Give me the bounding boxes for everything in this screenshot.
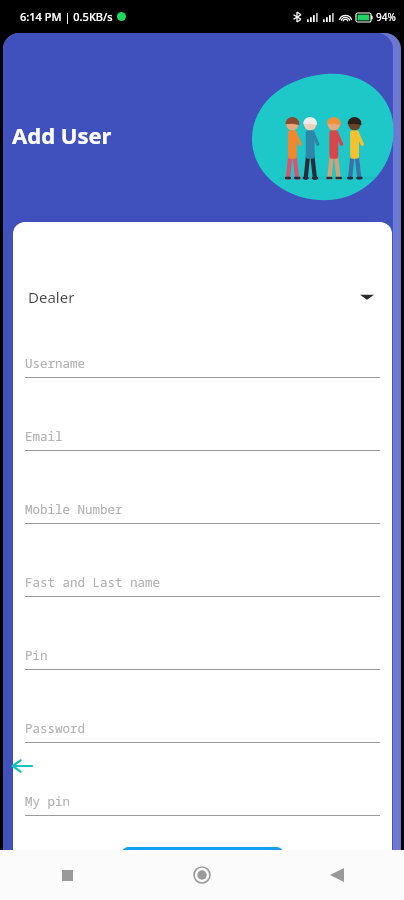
button[interactable]: Dealer: [13, 277, 392, 317]
button[interactable]: Recent apps: [0, 850, 134, 900]
staticText: Add User: [12, 120, 112, 150]
staticText: My pin: [25, 793, 71, 810]
button[interactable]: Back: [269, 850, 404, 900]
staticText: Username: [25, 355, 86, 372]
button[interactable]: Back: [5, 750, 37, 782]
button[interactable]: Pin: [25, 647, 380, 677]
staticText: Mobile Number: [25, 501, 123, 518]
button[interactable]: SUBMIT: [122, 847, 283, 850]
staticText: Email: [25, 428, 63, 445]
button[interactable]: Mobile Number: [25, 501, 380, 531]
button[interactable]: My pin: [25, 793, 380, 823]
staticText: Fast and Last name: [25, 574, 161, 591]
button[interactable]: Username: [25, 355, 380, 385]
staticText: Dealer: [28, 287, 75, 307]
button[interactable]: Password: [25, 720, 380, 750]
staticText: Pin: [25, 647, 48, 664]
button[interactable]: Fast and Last name: [25, 574, 380, 604]
button[interactable]: Email: [25, 428, 380, 458]
staticText: 6:14 PM | 0.5KB/s: [20, 9, 113, 24]
button[interactable]: Home: [134, 850, 269, 900]
staticText: 94%: [376, 10, 396, 24]
staticText: Password: [25, 720, 86, 737]
